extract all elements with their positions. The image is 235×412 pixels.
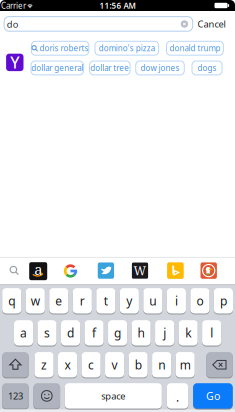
- staticText: p: [220, 293, 227, 309]
- button[interactable]: r: [73, 288, 92, 314]
- staticText: y: [126, 293, 132, 309]
- staticText: donald trump: [169, 43, 220, 53]
- staticText: u: [149, 293, 156, 309]
- button[interactable]: Shift: [2, 352, 29, 378]
- staticText: .: [176, 389, 179, 405]
- button[interactable]: f: [84, 320, 104, 346]
- button[interactable]: dollar general: [31, 61, 83, 75]
- staticText: z: [41, 357, 47, 373]
- button[interactable]: o: [190, 288, 209, 314]
- button[interactable]: u: [143, 288, 162, 314]
- staticText: 123: [8, 390, 23, 402]
- button[interactable]: Delete: [206, 352, 233, 378]
- staticText: h: [138, 325, 145, 341]
- button[interactable]: p: [214, 288, 233, 314]
- staticText: dollar tree: [90, 63, 129, 73]
- staticText: do: [7, 18, 19, 30]
- button[interactable]: g: [108, 320, 127, 346]
- staticText: 11:56 AM: [99, 0, 135, 11]
- staticText: m: [180, 357, 191, 373]
- staticText: f: [92, 325, 96, 341]
- button[interactable]: Bing: [167, 262, 184, 279]
- staticText: Y: [10, 52, 19, 73]
- staticText: W: [133, 262, 146, 279]
- button[interactable]: i: [167, 288, 186, 314]
- staticText: doris roberts: [40, 43, 89, 53]
- button[interactable]: q: [2, 288, 21, 314]
- button[interactable]: l: [202, 320, 221, 346]
- button[interactable]: Go: [193, 383, 233, 409]
- staticText: dollar general: [31, 63, 83, 73]
- button[interactable]: Search: [9, 265, 20, 276]
- staticText: v: [112, 357, 118, 373]
- button[interactable]: Wikipedia: [132, 262, 148, 279]
- staticText: a: [34, 259, 42, 279]
- staticText: j: [163, 325, 166, 341]
- button[interactable]: donald trump: [166, 41, 223, 55]
- button[interactable]: d: [61, 320, 80, 346]
- button[interactable]: n: [152, 352, 171, 378]
- staticText: dogs: [197, 63, 216, 73]
- button[interactable]: t: [96, 288, 115, 314]
- button[interactable]: Yahoo: [6, 54, 23, 71]
- button[interactable]: Google: [62, 262, 79, 279]
- staticText: space: [101, 390, 125, 402]
- button[interactable]: k: [179, 320, 198, 346]
- button[interactable]: Cancel: [197, 18, 225, 30]
- button[interactable]: z: [34, 352, 54, 378]
- staticText: Go: [206, 389, 220, 403]
- button[interactable]: Amazon: [29, 262, 47, 280]
- staticText: c: [88, 357, 94, 373]
- button[interactable]: Twitter: [98, 262, 114, 279]
- button[interactable]: j: [155, 320, 174, 346]
- button[interactable]: dogs: [192, 61, 222, 75]
- button[interactable]: dollar tree: [89, 61, 130, 75]
- staticText: l: [210, 325, 213, 341]
- staticText: d: [67, 325, 74, 341]
- staticText: i: [175, 293, 178, 309]
- button[interactable]: Search field: [4, 17, 193, 31]
- staticText: x: [65, 357, 71, 373]
- button[interactable]: b: [129, 352, 148, 378]
- staticText: dow jones: [140, 63, 179, 73]
- staticText: g: [114, 325, 121, 341]
- staticText: t: [104, 293, 108, 309]
- staticText: Cancel: [197, 18, 225, 30]
- button[interactable]: c: [81, 352, 101, 378]
- button[interactable]: a: [14, 320, 33, 346]
- button[interactable]: Clear text: [181, 20, 188, 28]
- button[interactable]: y: [120, 288, 139, 314]
- staticText: Carrier: [1, 0, 26, 11]
- button[interactable]: h: [132, 320, 151, 346]
- staticText: b: [135, 357, 142, 373]
- staticText: o: [196, 293, 203, 309]
- staticText: a: [20, 325, 27, 341]
- staticText: s: [44, 325, 50, 341]
- button[interactable]: doris roberts: [31, 41, 89, 55]
- staticText: r: [80, 293, 85, 309]
- button[interactable]: domino's pizza: [95, 41, 159, 55]
- staticText: domino's pizza: [99, 43, 155, 53]
- button[interactable]: e: [49, 288, 68, 314]
- staticText: k: [185, 325, 191, 341]
- staticText: q: [8, 293, 15, 309]
- staticText: e: [55, 293, 62, 309]
- button[interactable]: x: [58, 352, 77, 378]
- button[interactable]: 123: [2, 383, 29, 409]
- button[interactable]: .: [167, 383, 188, 409]
- button[interactable]: space: [65, 383, 162, 409]
- button[interactable]: v: [105, 352, 124, 378]
- button[interactable]: w: [26, 288, 45, 314]
- staticText: n: [158, 357, 165, 373]
- button[interactable]: dow jones: [136, 61, 184, 75]
- button[interactable]: m: [176, 352, 195, 378]
- button[interactable]: DuckDuckGo: [200, 262, 217, 279]
- button[interactable]: s: [37, 320, 57, 346]
- staticText: w: [31, 293, 40, 309]
- button[interactable]: Emoji: [33, 383, 60, 409]
